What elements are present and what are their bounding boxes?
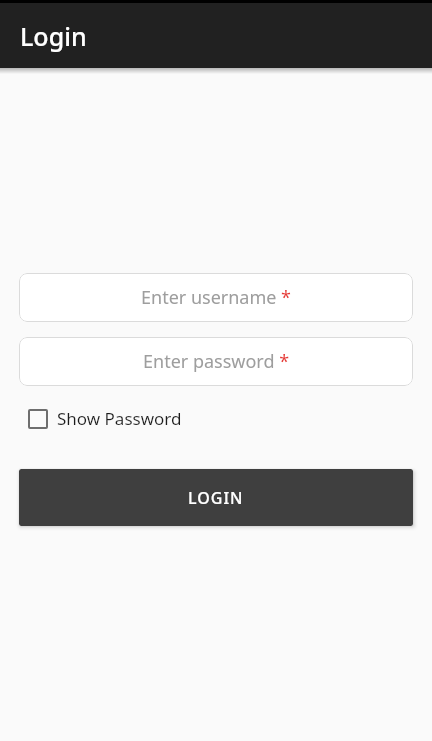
- button[interactable]: Enter username *: [19, 273, 413, 322]
- staticText: Enter password *: [143, 349, 290, 374]
- button[interactable]: Show Password: [28, 407, 182, 430]
- staticText: Login: [20, 19, 87, 53]
- staticText: Show Password: [57, 407, 182, 430]
- button[interactable]: LOGIN: [19, 469, 413, 526]
- button[interactable]: Enter password *: [19, 337, 413, 386]
- staticText: LOGIN: [188, 487, 244, 509]
- staticText: Enter username *: [141, 285, 292, 310]
